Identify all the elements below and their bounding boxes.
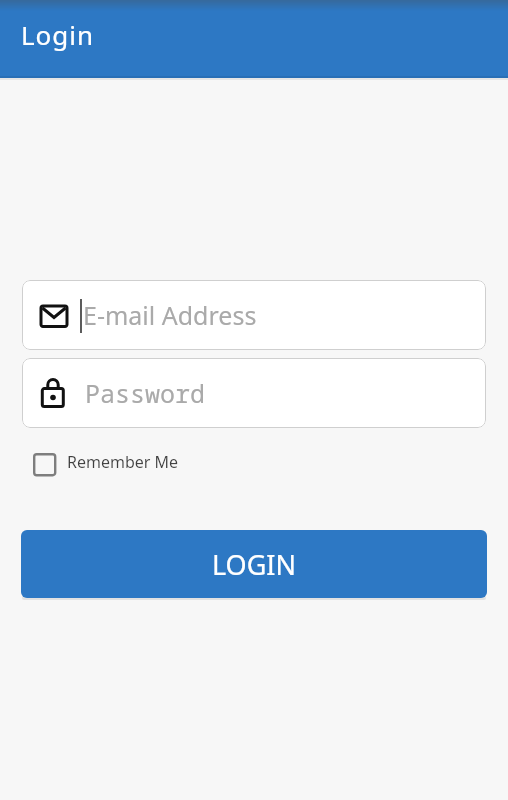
button[interactable]: Login: [0, 0, 508, 78]
button[interactable]: Remember Me: [33, 448, 179, 473]
staticText: LOGIN: [212, 546, 297, 583]
staticText: Login: [21, 17, 95, 52]
staticText: E-mail Address: [83, 298, 257, 332]
staticText: Remember Me: [67, 451, 179, 473]
button[interactable]: E-mail Address: [22, 280, 486, 350]
button[interactable]: LOGIN: [21, 530, 487, 598]
staticText: Password: [85, 376, 206, 410]
button[interactable]: Password: [22, 358, 486, 428]
